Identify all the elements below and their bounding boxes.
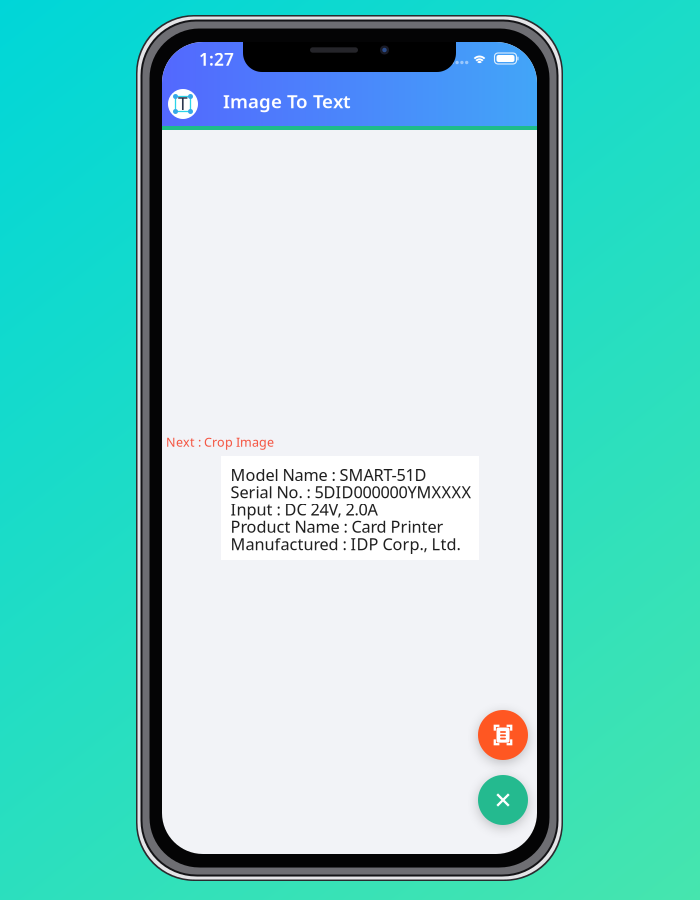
staticText: Model Name : SMART-51D bbox=[230, 464, 426, 486]
button[interactable]: Scan text from image bbox=[478, 710, 528, 760]
staticText: Product Name : Card Printer bbox=[230, 515, 443, 538]
staticText: Input : DC 24V, 2.0A bbox=[230, 498, 377, 520]
staticText: Image To Text bbox=[223, 88, 351, 114]
staticText: Manufactured : IDP Corp., Ltd. bbox=[230, 533, 460, 555]
staticText: Serial No. : 5DID000000YMXXXX bbox=[230, 481, 471, 503]
button[interactable]: Close bbox=[478, 775, 528, 825]
button[interactable]: Image To Text bbox=[168, 89, 198, 119]
staticText: 1:27 bbox=[199, 47, 234, 71]
staticText: Next : Crop Image bbox=[166, 433, 274, 451]
staticText: T bbox=[178, 92, 188, 115]
